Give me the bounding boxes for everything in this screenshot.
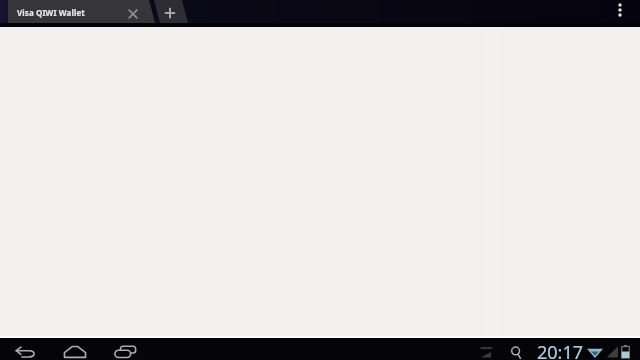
button[interactable]: Home xyxy=(63,345,87,358)
other: Notifications xyxy=(480,347,493,358)
button[interactable]: Close tab xyxy=(126,7,140,21)
button[interactable]: More options xyxy=(611,1,629,19)
button[interactable]: Visa QIWI Wallet xyxy=(8,0,126,23)
staticText: Visa QIWI Wallet xyxy=(17,7,85,18)
button[interactable]: Recent apps xyxy=(114,345,137,358)
staticText: 20:17 xyxy=(537,340,584,360)
button[interactable]: Search xyxy=(509,346,524,359)
button[interactable]: New tab xyxy=(163,6,177,20)
button[interactable]: Back xyxy=(14,345,37,358)
